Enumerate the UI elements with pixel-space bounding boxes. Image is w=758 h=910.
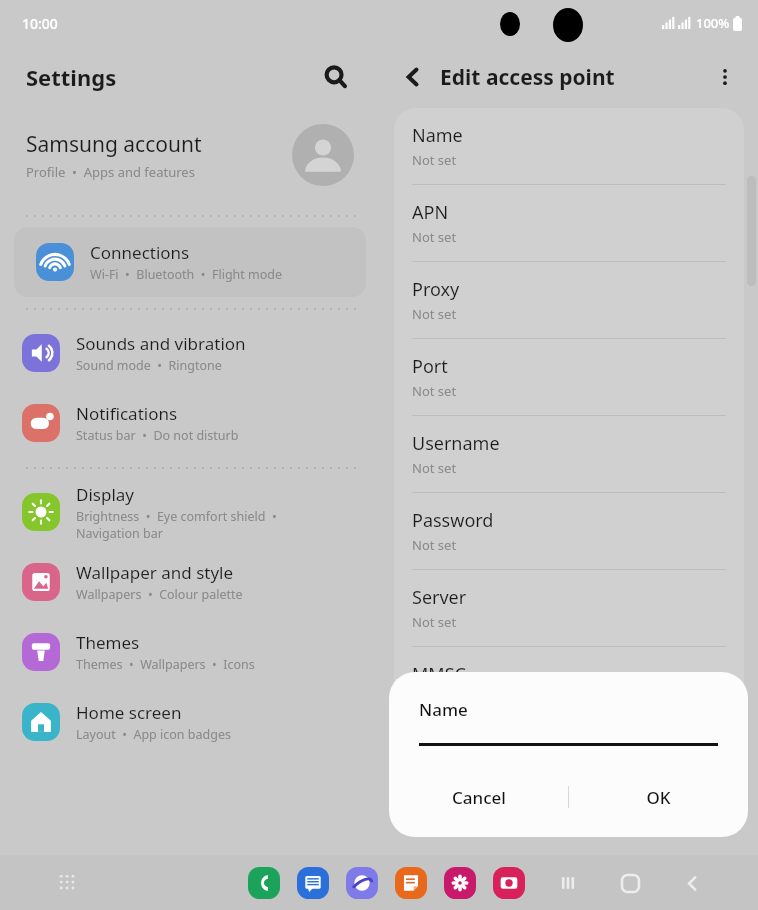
- button[interactable]: Notifications: [0, 388, 380, 458]
- staticText: Not set: [412, 305, 457, 323]
- staticText: Not set: [412, 690, 457, 708]
- staticText: Sound mode • Ringtone: [76, 357, 222, 374]
- staticText: MMSC: [412, 662, 466, 687]
- staticText: Not set: [412, 613, 457, 631]
- staticText: Connections: [90, 241, 190, 264]
- button[interactable]: More options: [704, 56, 746, 98]
- button[interactable]: Sounds and vibration: [0, 318, 380, 388]
- staticText: Layout • App icon badges: [76, 726, 231, 743]
- staticText: Not set: [412, 151, 457, 169]
- staticText: Cancel: [452, 786, 506, 809]
- staticText: Not set: [412, 536, 457, 554]
- button[interactable]: Password: [394, 493, 744, 569]
- staticText: Profile • Apps and features: [26, 163, 195, 181]
- button[interactable]: Gallery: [443, 866, 477, 900]
- button[interactable]: Name: [394, 108, 744, 184]
- button[interactable]: Display: [0, 477, 380, 547]
- button[interactable]: Samsung account: [0, 108, 380, 202]
- staticText: Sounds and vibration: [76, 332, 246, 355]
- button[interactable]: Recents: [548, 863, 588, 903]
- button[interactable]: Home: [610, 863, 650, 903]
- staticText: 10:00: [22, 14, 58, 33]
- button[interactable]: Camera: [492, 866, 526, 900]
- button[interactable]: Connections: [14, 227, 366, 297]
- staticText: Not set: [412, 382, 457, 400]
- staticText: Wallpaper and style: [76, 561, 234, 584]
- staticText: Port: [412, 354, 448, 379]
- staticText: Edit access point: [440, 63, 615, 92]
- button[interactable]: Server: [394, 570, 744, 646]
- staticText: Username: [412, 431, 500, 456]
- staticText: Samsung account: [26, 130, 202, 159]
- staticText: Not set: [412, 228, 457, 246]
- staticText: Themes • Wallpapers • Icons: [76, 656, 255, 673]
- staticText: Home screen: [76, 701, 182, 724]
- staticText: 100%: [696, 14, 730, 32]
- staticText: MMS proxy: [412, 739, 507, 764]
- button[interactable]: Notes: [394, 866, 428, 900]
- button[interactable]: Apps: [48, 863, 88, 903]
- staticText: Themes: [76, 631, 140, 654]
- button[interactable]: Messages: [296, 866, 330, 900]
- staticText: Name: [412, 123, 463, 148]
- staticText: Server: [412, 585, 467, 610]
- staticText: Brightness • Eye comfort shield • Naviga…: [76, 508, 277, 541]
- button[interactable]: Username: [394, 416, 744, 492]
- button[interactable]: Internet: [345, 866, 379, 900]
- staticText: Wi-Fi • Bluetooth • Flight mode: [90, 266, 283, 283]
- staticText: Settings: [26, 62, 117, 92]
- button[interactable]: Home screen: [0, 687, 380, 757]
- staticText: Password: [412, 508, 494, 533]
- button[interactable]: Search: [316, 57, 356, 97]
- staticText: Display: [76, 483, 134, 506]
- button[interactable]: Proxy: [394, 262, 744, 338]
- button[interactable]: Wallpaper and style: [0, 547, 380, 617]
- button[interactable]: Back: [672, 863, 712, 903]
- button[interactable]: Port: [394, 339, 744, 415]
- button[interactable]: Back: [392, 56, 434, 98]
- staticText: APN: [412, 200, 449, 225]
- button[interactable]: Phone: [247, 866, 281, 900]
- staticText: Name: [419, 698, 468, 721]
- button[interactable]: Themes: [0, 617, 380, 687]
- staticText: Not set: [412, 459, 457, 477]
- staticText: OK: [646, 786, 671, 809]
- button[interactable]: Cancel: [389, 769, 568, 825]
- staticText: Proxy: [412, 277, 460, 302]
- staticText: Notifications: [76, 402, 178, 425]
- staticText: Status bar • Do not disturb: [76, 427, 239, 444]
- button[interactable]: MMSC: [394, 647, 744, 723]
- button[interactable]: APN: [394, 185, 744, 261]
- button[interactable]: MMS proxy: [394, 724, 744, 800]
- button[interactable]: OK: [569, 769, 748, 825]
- staticText: Wallpapers • Colour palette: [76, 586, 243, 603]
